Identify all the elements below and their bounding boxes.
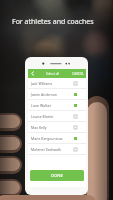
staticText: CANCEL <box>72 72 84 76</box>
staticText: Max Kelly <box>31 125 74 130</box>
staticText: Louise Martin <box>31 114 74 119</box>
button[interactable]: Jack Williams <box>28 78 86 89</box>
button[interactable]: DONE <box>30 170 84 181</box>
staticText: For athletes and coaches <box>12 17 94 27</box>
staticText: Jack Williams <box>31 81 74 86</box>
button[interactable]: Marie Bergounioux <box>28 133 86 144</box>
staticText: DONE <box>51 173 63 179</box>
button[interactable]: Jamie Anderson <box>28 89 86 100</box>
button[interactable]: Max Kelly <box>28 122 86 133</box>
other: Back <box>30 71 35 76</box>
button[interactable]: Louise Martin <box>28 111 86 122</box>
staticText: Liam Walker <box>31 103 74 108</box>
staticText: Mehmet Yashwalk <box>31 147 74 152</box>
staticText: Select all <box>46 72 60 76</box>
button[interactable]: Liam Walker <box>28 100 86 111</box>
staticText: Jamie Anderson <box>31 92 74 97</box>
button[interactable]: Mehmet Yashwalk <box>28 144 86 155</box>
staticText: Marie Bergounioux <box>31 136 74 141</box>
button[interactable]: Back <box>28 69 86 78</box>
